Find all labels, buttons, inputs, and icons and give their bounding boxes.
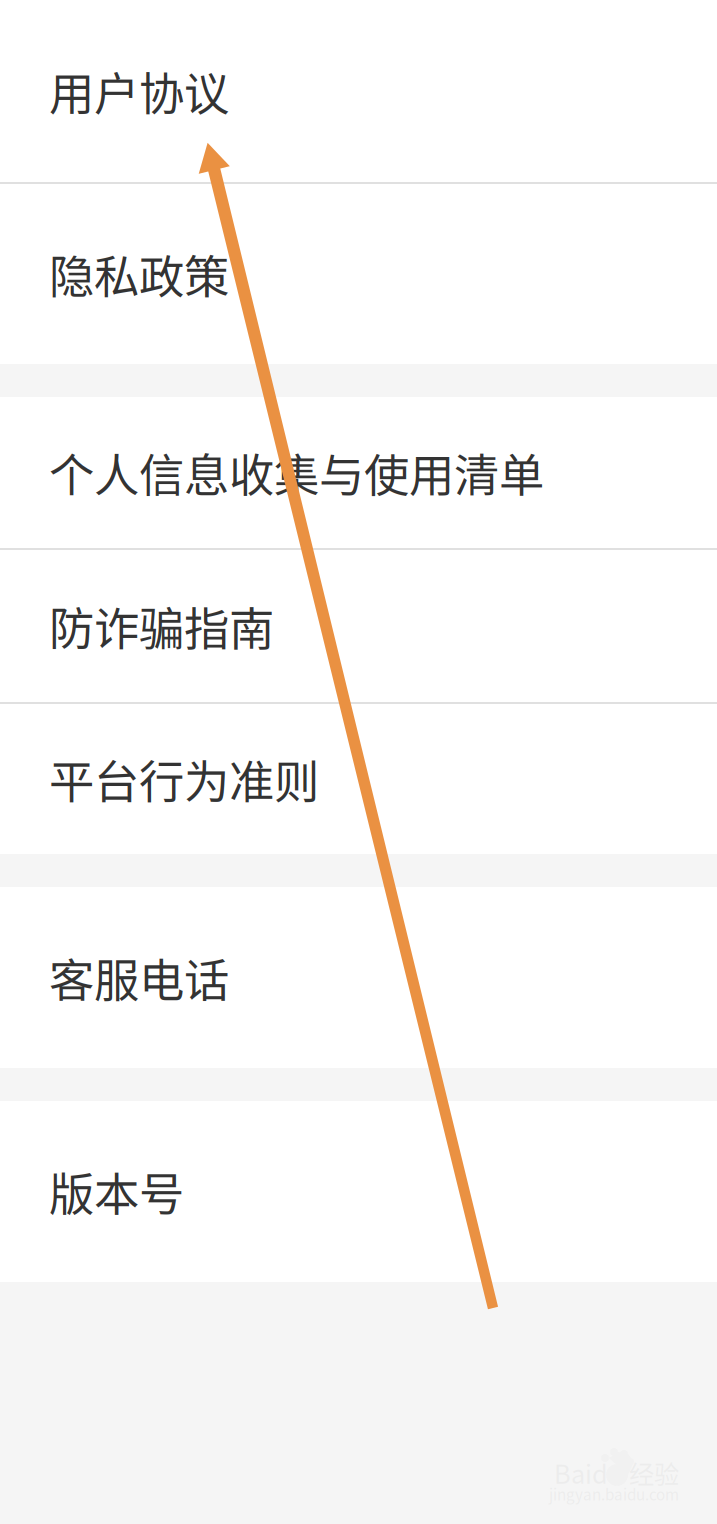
- staticText: 版本号: [49, 1159, 184, 1224]
- staticText: 客服电话: [49, 945, 229, 1010]
- staticText: 用户协议: [49, 58, 229, 124]
- button[interactable]: 隐私政策: [0, 184, 717, 364]
- button[interactable]: 平台行为准则: [0, 704, 717, 854]
- staticText: 平台行为准则: [49, 746, 319, 812]
- staticText: 个人信息收集与使用清单: [49, 440, 544, 505]
- button[interactable]: 用户协议: [0, 0, 717, 182]
- button[interactable]: 版本号: [0, 1101, 717, 1282]
- staticText: 隐私政策: [49, 241, 229, 307]
- button[interactable]: 客服电话: [0, 887, 717, 1068]
- button[interactable]: 防诈骗指南: [0, 550, 717, 702]
- button[interactable]: 个人信息收集与使用清单: [0, 397, 717, 548]
- staticText: 防诈骗指南: [49, 593, 274, 659]
